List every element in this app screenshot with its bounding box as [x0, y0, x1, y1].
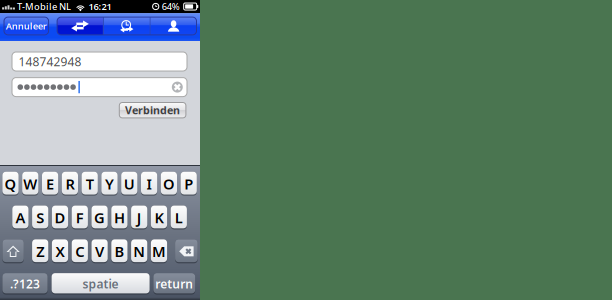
button[interactable]: O — [161, 172, 177, 196]
staticText: Y — [105, 174, 114, 193]
button[interactable]: L — [171, 205, 187, 229]
button[interactable]: V — [91, 239, 108, 263]
staticText: K — [154, 208, 163, 227]
button[interactable]: spatie — [52, 273, 150, 295]
staticText: S — [36, 208, 44, 227]
staticText: E — [46, 174, 54, 193]
button[interactable]: W — [22, 172, 38, 196]
button[interactable]: Backspace — [175, 239, 198, 263]
button[interactable]: Q — [2, 172, 19, 196]
staticText: spatie — [83, 276, 119, 292]
button[interactable]: M — [151, 239, 167, 263]
button[interactable]: D — [52, 205, 68, 229]
button[interactable]: B — [111, 239, 127, 263]
staticText: Annuleer — [6, 20, 47, 32]
button[interactable]: S — [32, 205, 48, 229]
staticText: R — [65, 174, 74, 193]
button[interactable]: J — [131, 205, 147, 229]
button[interactable]: return — [153, 273, 195, 295]
staticText: H — [114, 208, 125, 227]
staticText: T — [86, 174, 94, 193]
staticText: G — [94, 208, 105, 227]
button[interactable]: A — [12, 205, 28, 229]
staticText: C — [75, 242, 84, 261]
staticText: A — [15, 208, 25, 227]
button[interactable]: Overboeken — [57, 17, 103, 35]
button[interactable]: N — [131, 239, 147, 263]
button[interactable]: Y — [101, 172, 118, 196]
staticText: D — [54, 208, 65, 227]
button[interactable]: G — [91, 205, 108, 229]
button[interactable]: Shift — [2, 239, 24, 263]
button[interactable]: X — [52, 239, 68, 263]
button[interactable]: U — [121, 172, 137, 196]
staticText: 64% — [162, 0, 180, 13]
staticText: Z — [36, 242, 44, 261]
staticText: X — [55, 242, 64, 261]
button[interactable]: Profiel — [151, 17, 196, 35]
button[interactable]: R — [62, 172, 78, 196]
staticText: .?123 — [10, 276, 40, 292]
staticText: U — [124, 174, 135, 193]
button[interactable]: Annuleer — [4, 17, 49, 35]
button[interactable]: I — [141, 172, 157, 196]
staticText: V — [95, 242, 104, 261]
button[interactable]: E — [42, 172, 58, 196]
button[interactable]: T — [82, 172, 98, 196]
staticText: W — [23, 174, 37, 193]
staticText: L — [175, 208, 183, 227]
button[interactable]: Z — [32, 239, 48, 263]
staticText: 148742948 — [18, 53, 81, 69]
staticText: I — [147, 174, 152, 193]
staticText: N — [133, 242, 145, 261]
button[interactable]: C — [72, 239, 88, 263]
staticText: J — [137, 208, 142, 227]
staticText: T-Mobile NL — [17, 0, 71, 13]
button[interactable]: F — [72, 205, 88, 229]
staticText: Verbinden — [125, 103, 180, 117]
button[interactable]: Verbinden — [119, 102, 186, 118]
button[interactable]: H — [111, 205, 127, 229]
staticText: M — [152, 242, 166, 261]
staticText: 16:21 — [88, 0, 111, 13]
staticText: B — [114, 242, 124, 261]
button[interactable]: P — [181, 172, 197, 196]
staticText: F — [76, 208, 84, 227]
button[interactable]: .?123 — [2, 273, 48, 295]
staticText: return — [155, 276, 193, 292]
staticText: Q — [4, 174, 16, 193]
button[interactable]: Geschiedenis — [104, 17, 150, 35]
staticText: O — [163, 174, 175, 193]
button[interactable]: K — [151, 205, 167, 229]
staticText: P — [184, 174, 193, 193]
